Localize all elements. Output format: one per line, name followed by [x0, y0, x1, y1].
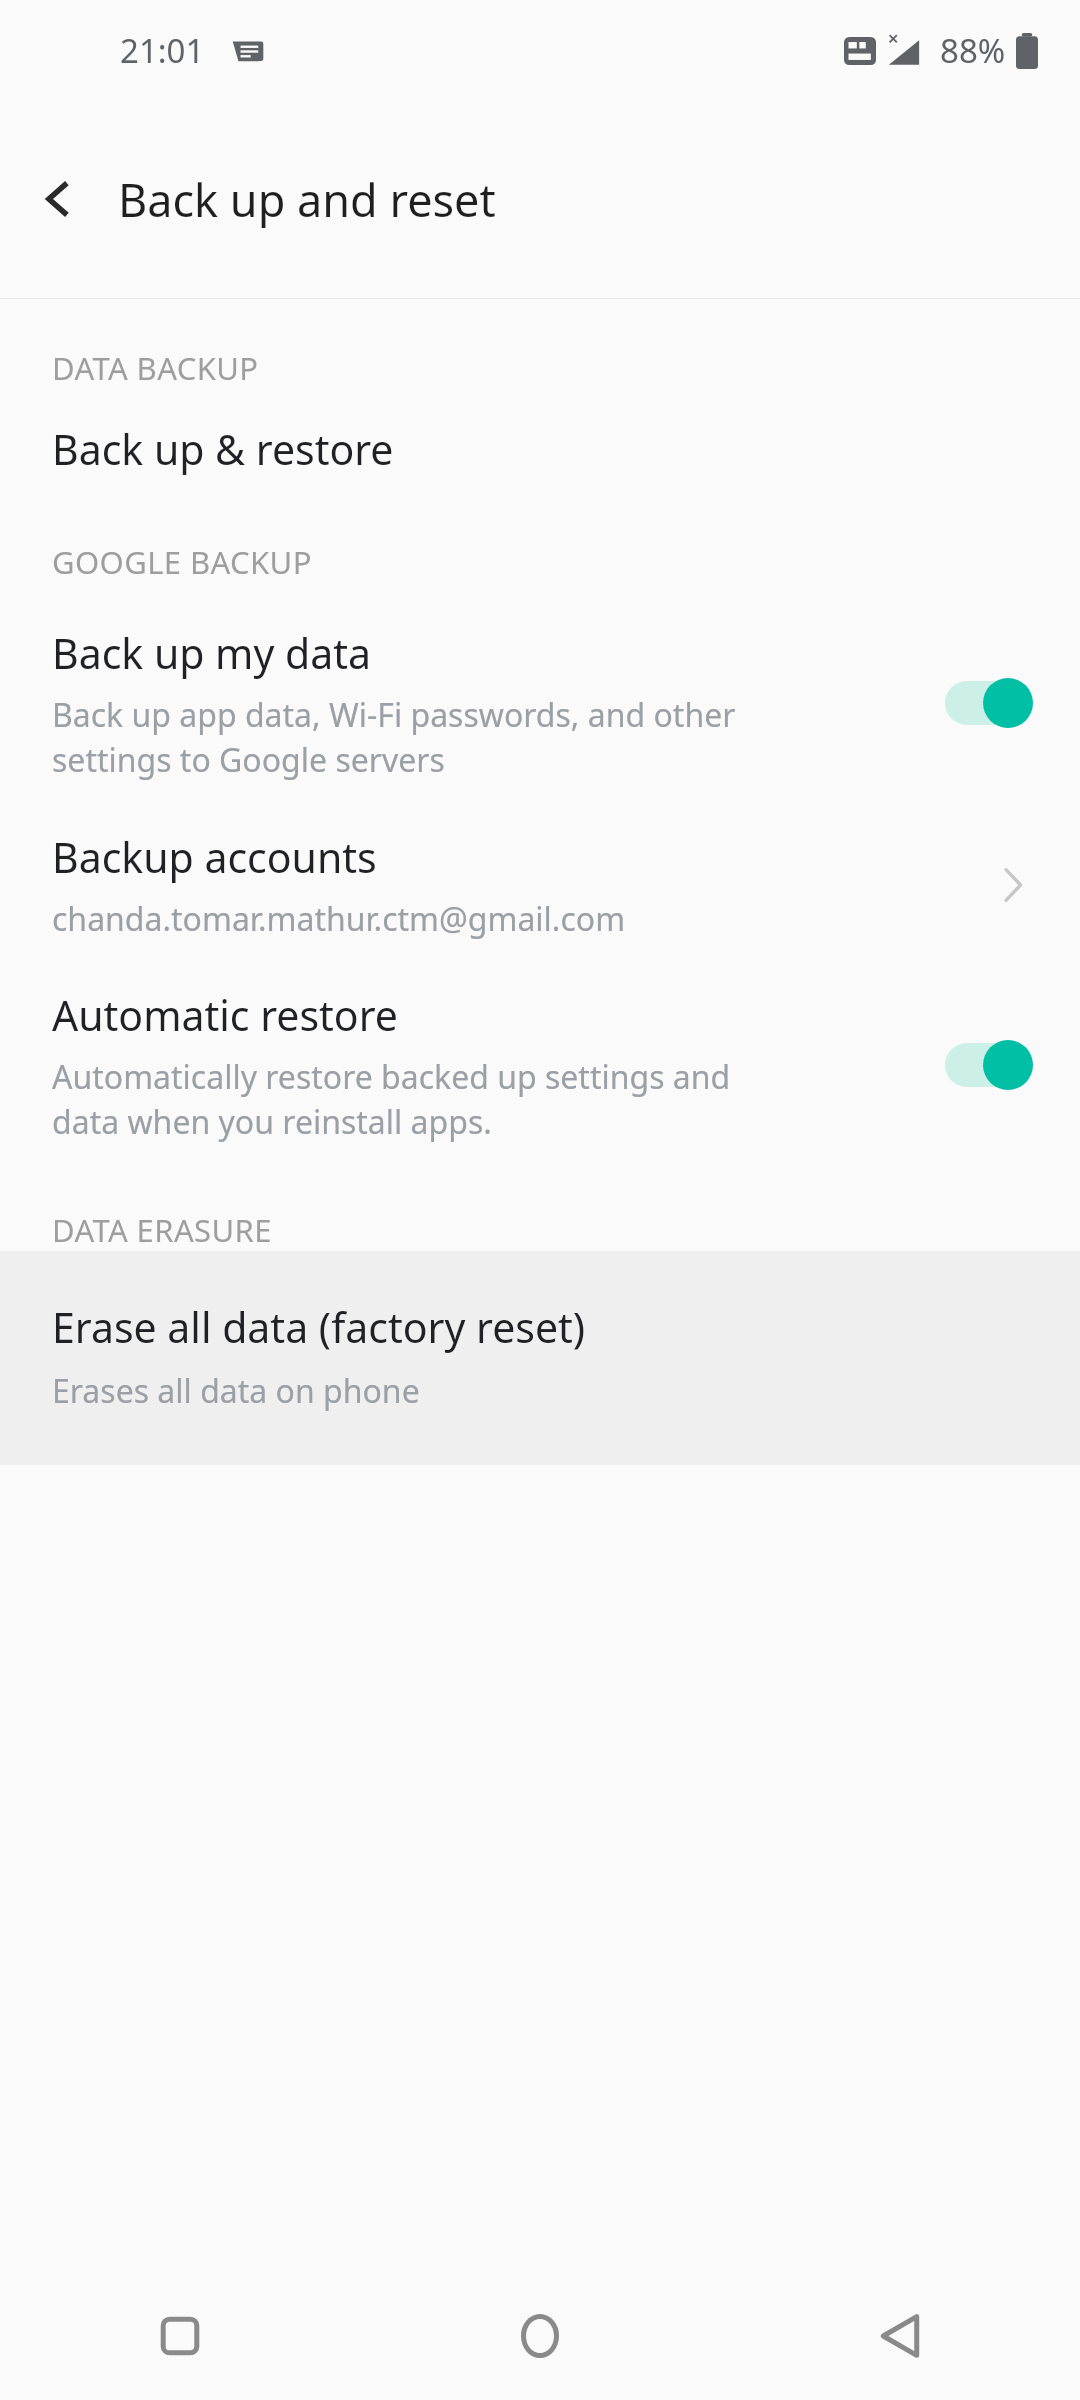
button[interactable]: Erase all data (factory reset) [0, 1251, 1080, 1465]
button[interactable]: Back up & restore [0, 415, 1080, 511]
staticText: DATA BACKUP [52, 347, 259, 389]
staticText: Backup accounts [52, 829, 377, 885]
button[interactable]: Home [360, 2272, 720, 2400]
staticText: chanda.tomar.mathur.ctm@gmail.com [52, 897, 626, 941]
button[interactable]: Back [20, 161, 96, 237]
staticText: Back up and reset [118, 169, 496, 230]
staticText: Automatically restore backed up settings… [52, 1055, 731, 1143]
staticText: Back up app data, Wi-Fi passwords, and o… [52, 693, 736, 781]
button[interactable]: Recent apps [0, 2272, 360, 2400]
staticText: Erases all data on phone [52, 1369, 420, 1413]
button[interactable]: Toggle [944, 676, 1034, 730]
button[interactable]: Backup accounts [0, 807, 1080, 969]
staticText: Back up & restore [52, 421, 394, 477]
staticText: 21:01 [120, 28, 205, 73]
button[interactable]: Back [720, 2272, 1080, 2400]
staticText: GOOGLE BACKUP [52, 541, 312, 583]
staticText: Erase all data (factory reset) [52, 1299, 586, 1355]
staticText: Automatic restore [52, 987, 398, 1043]
button[interactable]: Toggle [944, 1038, 1034, 1092]
staticText: DATA ERASURE [52, 1209, 272, 1251]
staticText: 88% [940, 28, 1006, 73]
button[interactable]: Automatic restore [0, 969, 1080, 1169]
button[interactable]: Back up my data [0, 607, 1080, 807]
staticText: Back up my data [52, 625, 372, 681]
